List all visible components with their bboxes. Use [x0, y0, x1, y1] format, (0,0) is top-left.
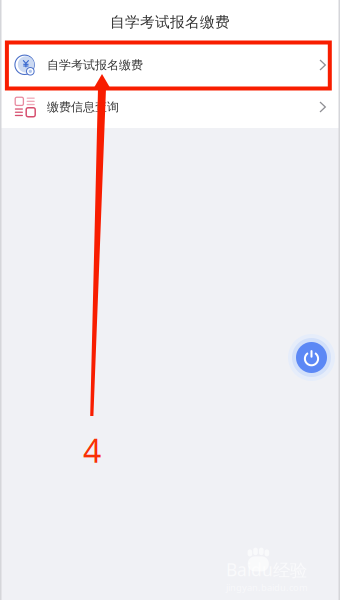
button[interactable]: 自学考试报名缴费: [0, 44, 340, 86]
staticText: Baidu经验: [226, 558, 307, 581]
button[interactable]: Power: [288, 334, 335, 381]
staticText: 4: [83, 429, 101, 471]
button[interactable]: 缴费信息查询: [0, 86, 340, 128]
staticText: 自学考试报名缴费: [110, 13, 230, 31]
staticText: 自学考试报名缴费: [47, 58, 143, 72]
staticText: 缴费信息查询: [47, 100, 119, 114]
